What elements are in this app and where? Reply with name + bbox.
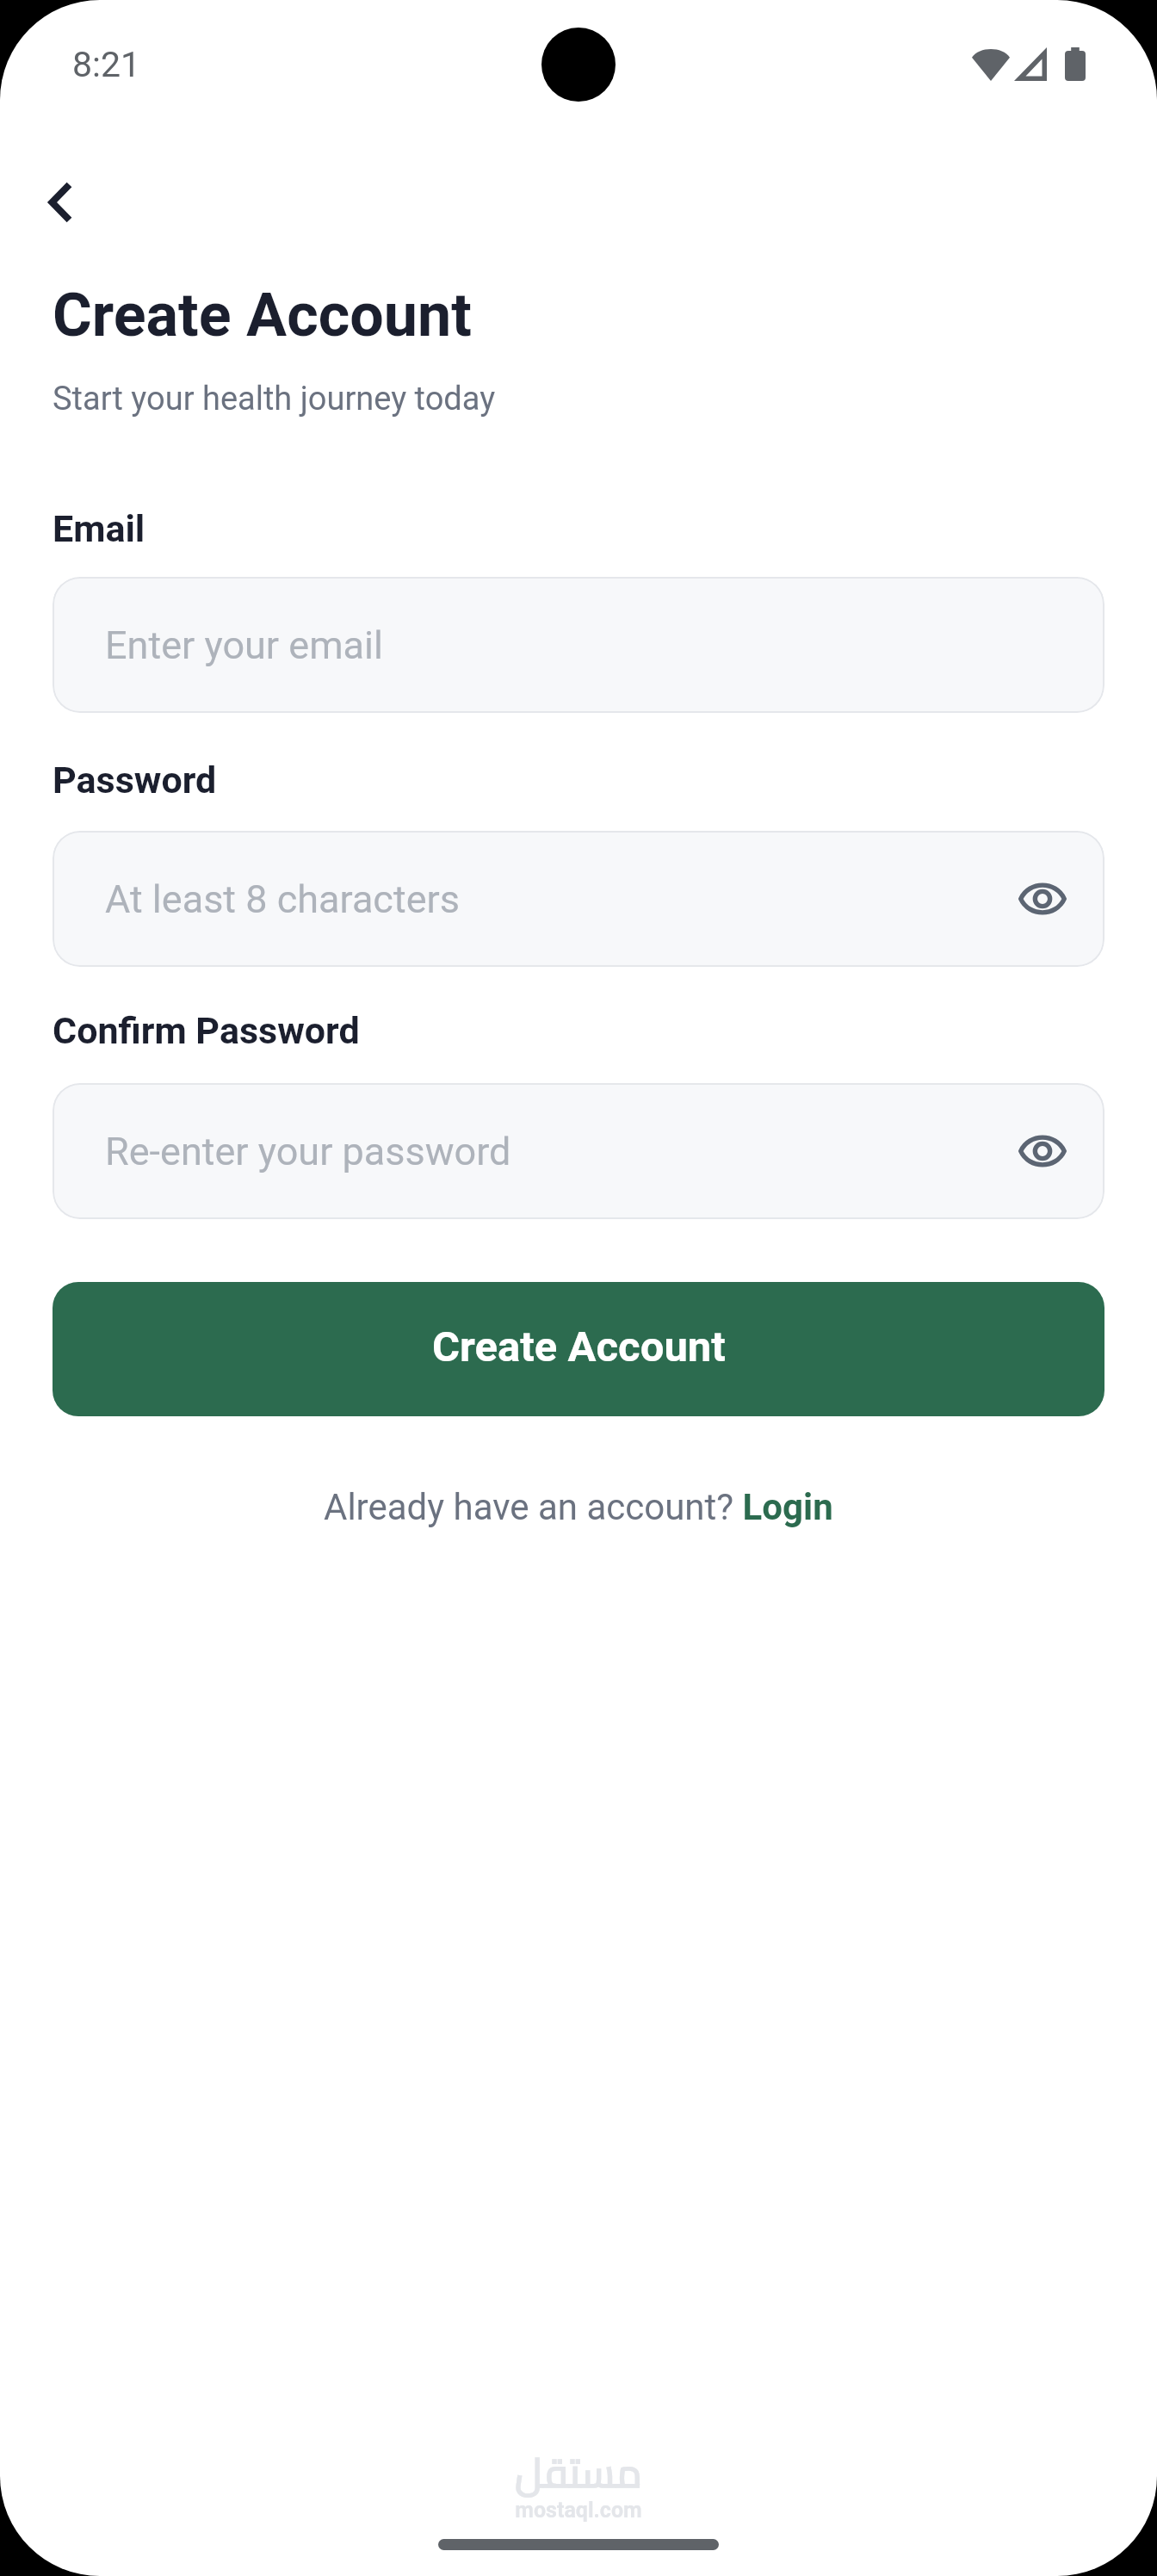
button[interactable]: Already have an account? Login [324,1486,833,1528]
staticText: Enter your email [105,622,383,668]
button[interactable]: Back [19,161,102,244]
button[interactable]: At least 8 characters [53,831,1104,967]
staticText: Re-enter your password [105,1129,511,1174]
staticText: At least 8 characters [105,876,460,922]
staticText: mostaql.com [515,2498,642,2523]
staticText: Create Account [53,280,472,350]
staticText: 8:21 [72,44,141,85]
staticText: Start your health journey today [53,380,496,418]
button[interactable]: Enter your email [53,577,1104,713]
staticText: Already have an account? Login [324,1486,833,1528]
staticText: مستقل [515,2435,642,2511]
button[interactable]: Create Account [53,1282,1104,1416]
button[interactable]: Show password [1009,865,1076,932]
button[interactable]: Re-enter your password [53,1083,1104,1219]
button[interactable]: Show password [1009,1118,1076,1185]
staticText: Confirm Password [53,1009,360,1052]
staticText: Email [53,507,145,550]
staticText: Password [53,759,217,802]
staticText: Create Account [432,1322,726,1372]
